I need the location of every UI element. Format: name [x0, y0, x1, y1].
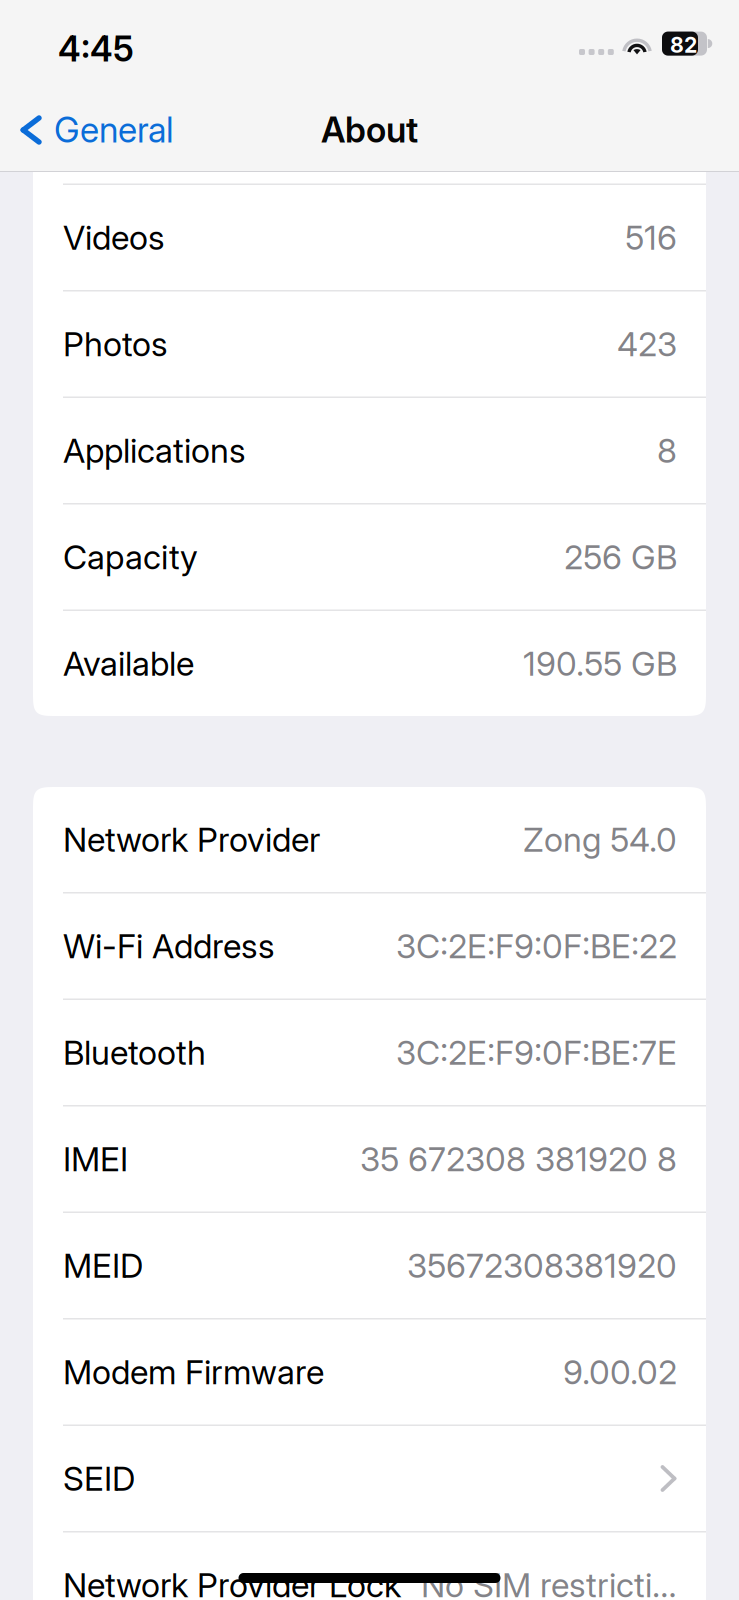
staticText: 8 [657, 430, 677, 471]
staticText: Available [63, 643, 194, 684]
button[interactable]: Available [33, 611, 706, 716]
staticText: 35 672308 381920 8 [360, 1139, 677, 1179]
staticText: Photos [63, 324, 168, 364]
staticText: 190.55 GB [523, 643, 677, 684]
button[interactable]: MEID [33, 1213, 706, 1318]
staticText: Zong 54.0 [523, 819, 677, 860]
staticText: Songs [63, 111, 158, 151]
staticText: Modem Firmware [63, 1352, 324, 1392]
staticText: 82 [670, 32, 697, 58]
staticText: 3C:2E:F9:0F:BE:22 [396, 926, 677, 966]
button[interactable]: Videos [33, 185, 706, 290]
staticText: Applications [63, 430, 246, 471]
button[interactable]: Network Provider [33, 787, 706, 892]
staticText: 256 GB [564, 537, 677, 577]
staticText: No SIM restricti… [421, 1565, 677, 1600]
staticText: IMEI [63, 1139, 128, 1179]
button[interactable]: Applications [33, 398, 706, 503]
staticText: Bluetooth [63, 1032, 206, 1073]
staticText: Wi-Fi Address [63, 926, 275, 966]
staticText: 9.00.02 [563, 1352, 677, 1392]
button[interactable]: Wi-Fi Address [33, 893, 706, 998]
button[interactable]: Capacity [33, 504, 706, 609]
button[interactable]: Songs [33, 78, 706, 183]
staticText: About [321, 109, 418, 151]
staticText: General [54, 109, 174, 151]
button[interactable]: Network Provider Lock [33, 1532, 706, 1600]
staticText: Capacity [63, 537, 198, 577]
staticText: 516 [625, 217, 677, 258]
button[interactable]: Photos [33, 291, 706, 396]
staticText: Network Provider [63, 819, 320, 860]
button[interactable]: Bluetooth [33, 1000, 706, 1105]
button[interactable]: IMEI [33, 1106, 706, 1211]
staticText: Videos [63, 217, 165, 258]
button[interactable]: SEID [33, 1426, 706, 1531]
staticText: SEID [63, 1458, 135, 1499]
staticText: 423 [617, 324, 677, 364]
staticText: 3C:2E:F9:0F:BE:7E [396, 1032, 677, 1073]
button[interactable]: General [0, 89, 188, 171]
staticText: Network Provider Lock [63, 1565, 401, 1600]
staticText: MEID [63, 1245, 143, 1286]
staticText: 4:45 [58, 28, 134, 70]
staticText: 35672308381920 [407, 1245, 677, 1286]
button[interactable]: Modem Firmware [33, 1319, 706, 1424]
